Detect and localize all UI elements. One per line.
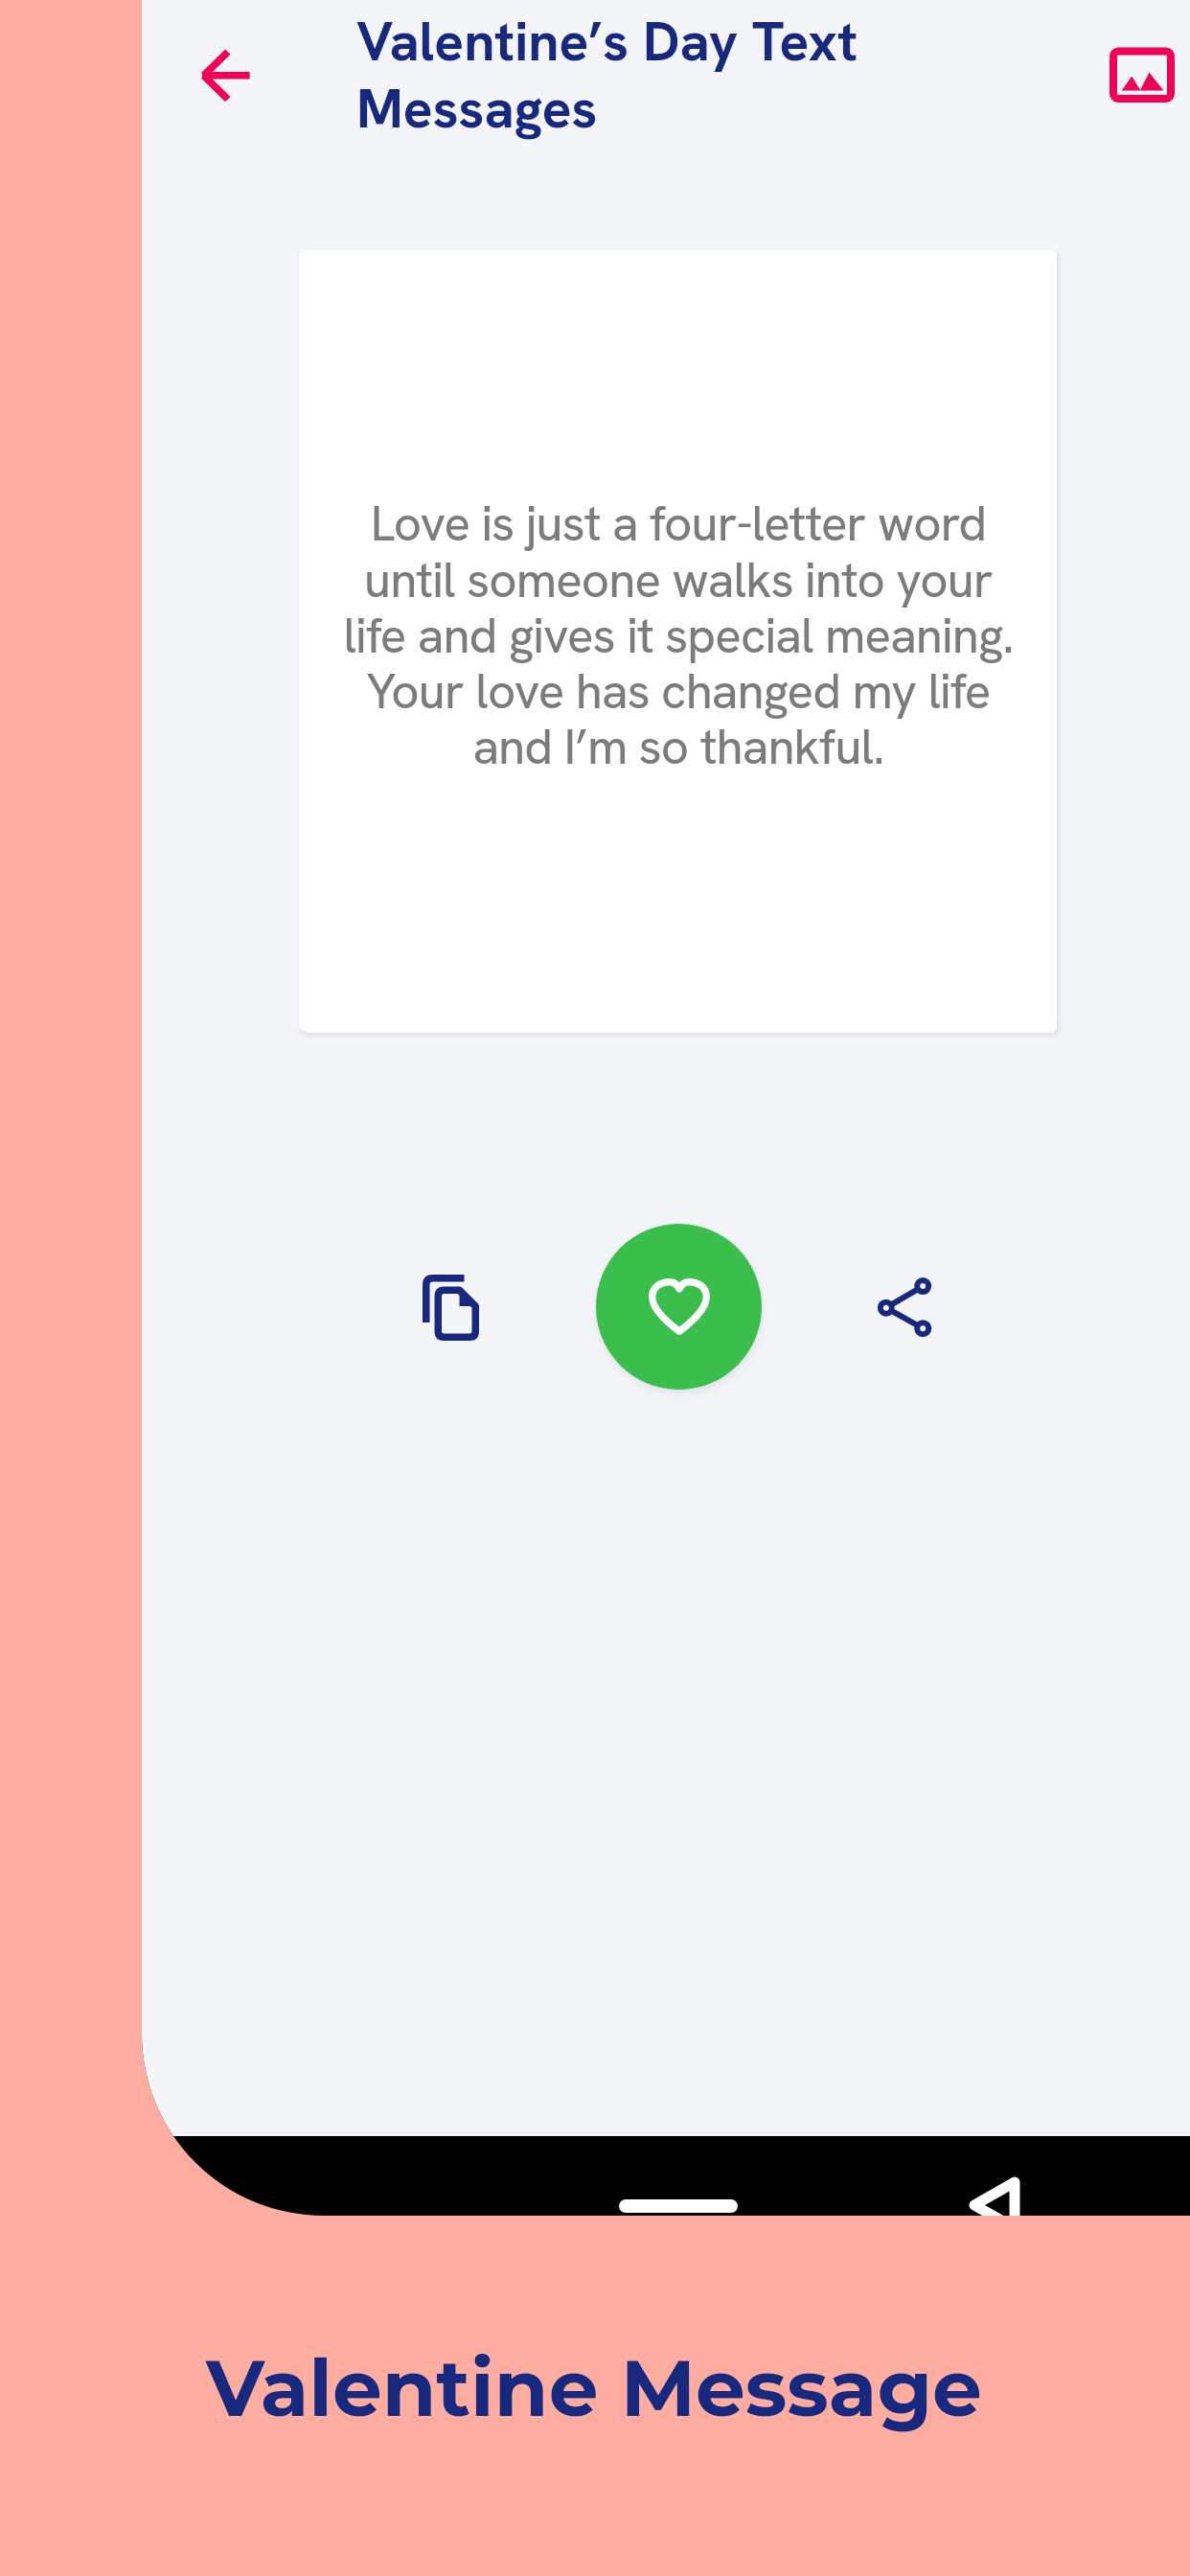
button[interactable]: Back	[169, 28, 274, 124]
button[interactable]: Share	[830, 1259, 935, 1355]
staticText: Love is just a four-letter word until so…	[343, 492, 1014, 778]
button[interactable]: Favourite	[596, 1224, 762, 1390]
button[interactable]: Love is just a four-letter word until so…	[299, 250, 1057, 1031]
button[interactable]: Copy	[375, 1246, 480, 1361]
staticText: Valentine Message	[206, 2340, 982, 2436]
staticText: Valentine’s Day Text Messages	[356, 6, 931, 144]
button[interactable]: Image	[1086, 24, 1190, 125]
